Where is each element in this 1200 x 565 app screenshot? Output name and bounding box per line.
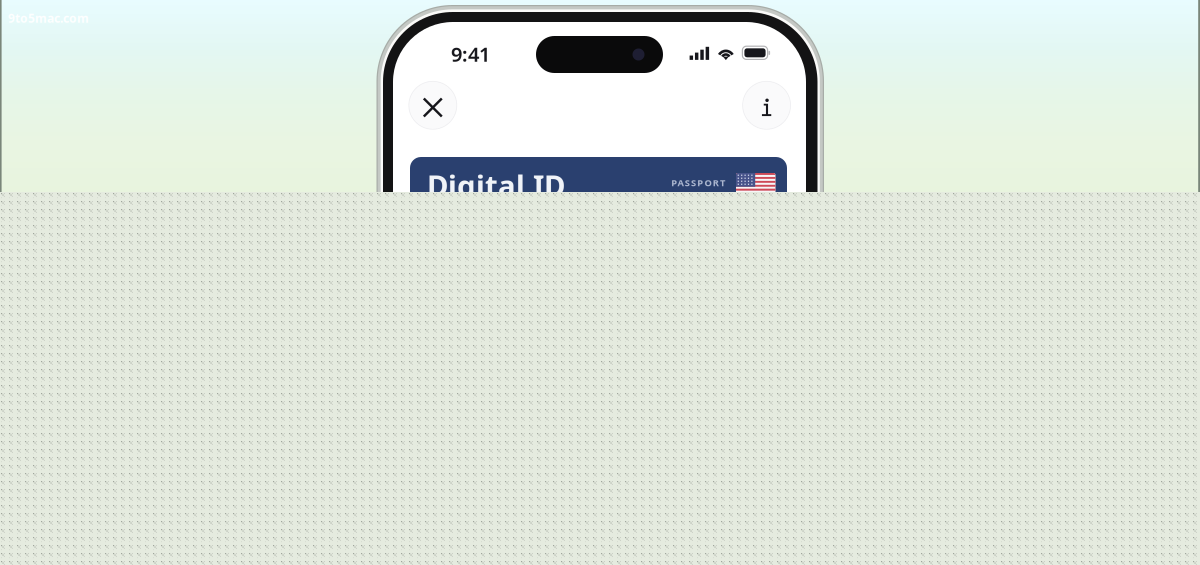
staticText: 9to5mac.com bbox=[8, 10, 89, 26]
staticText: PASSPORT bbox=[671, 176, 725, 189]
button[interactable]: Information bbox=[743, 81, 791, 129]
staticText: VERIFIED bbox=[674, 192, 725, 204]
button[interactable]: Close bbox=[409, 81, 457, 129]
staticText: 9:41 bbox=[451, 41, 490, 67]
staticText: Digital ID bbox=[427, 165, 565, 204]
